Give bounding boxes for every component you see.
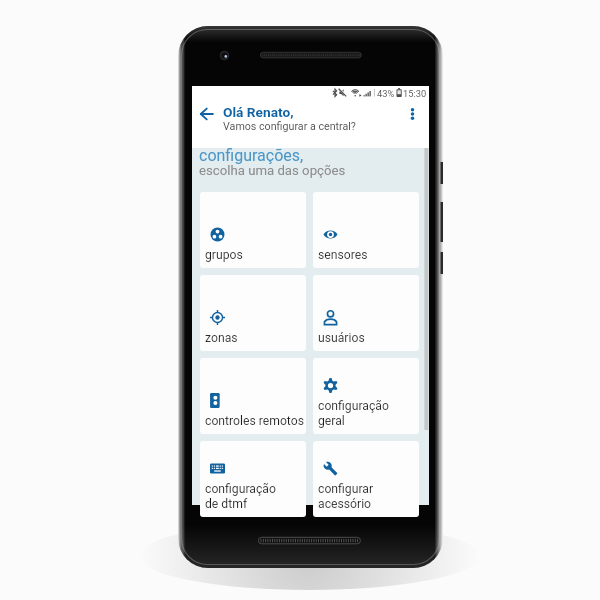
staticText: Vamos configurar a central? <box>223 120 356 133</box>
staticText: 43% <box>377 88 395 99</box>
staticText: zonas <box>205 331 238 345</box>
button[interactable]: Back <box>193 101 219 127</box>
button[interactable]: zonas <box>200 275 306 351</box>
staticText: escolha uma das opções <box>199 163 346 178</box>
button[interactable]: sensores <box>313 192 419 268</box>
staticText: Olá Renato, <box>223 104 294 120</box>
staticText: 15:30 <box>403 88 427 99</box>
staticText: configurações, <box>199 146 304 165</box>
staticText: configuração geral <box>318 399 389 428</box>
button[interactable]: More options <box>400 102 424 126</box>
button[interactable]: usuários <box>313 275 419 351</box>
button[interactable]: grupos <box>200 192 306 268</box>
staticText: grupos <box>205 248 243 262</box>
staticText: usuários <box>318 331 365 345</box>
button[interactable]: controles remotos <box>200 358 306 434</box>
staticText: configurar acessório <box>318 482 374 511</box>
button[interactable]: configurar acessório <box>313 441 419 517</box>
staticText: sensores <box>318 248 368 262</box>
staticText: controles remotos <box>205 414 304 428</box>
button[interactable]: configuração de dtmf <box>200 441 306 517</box>
button[interactable]: configuração geral <box>313 358 419 434</box>
staticText: configuração de dtmf <box>205 482 276 511</box>
